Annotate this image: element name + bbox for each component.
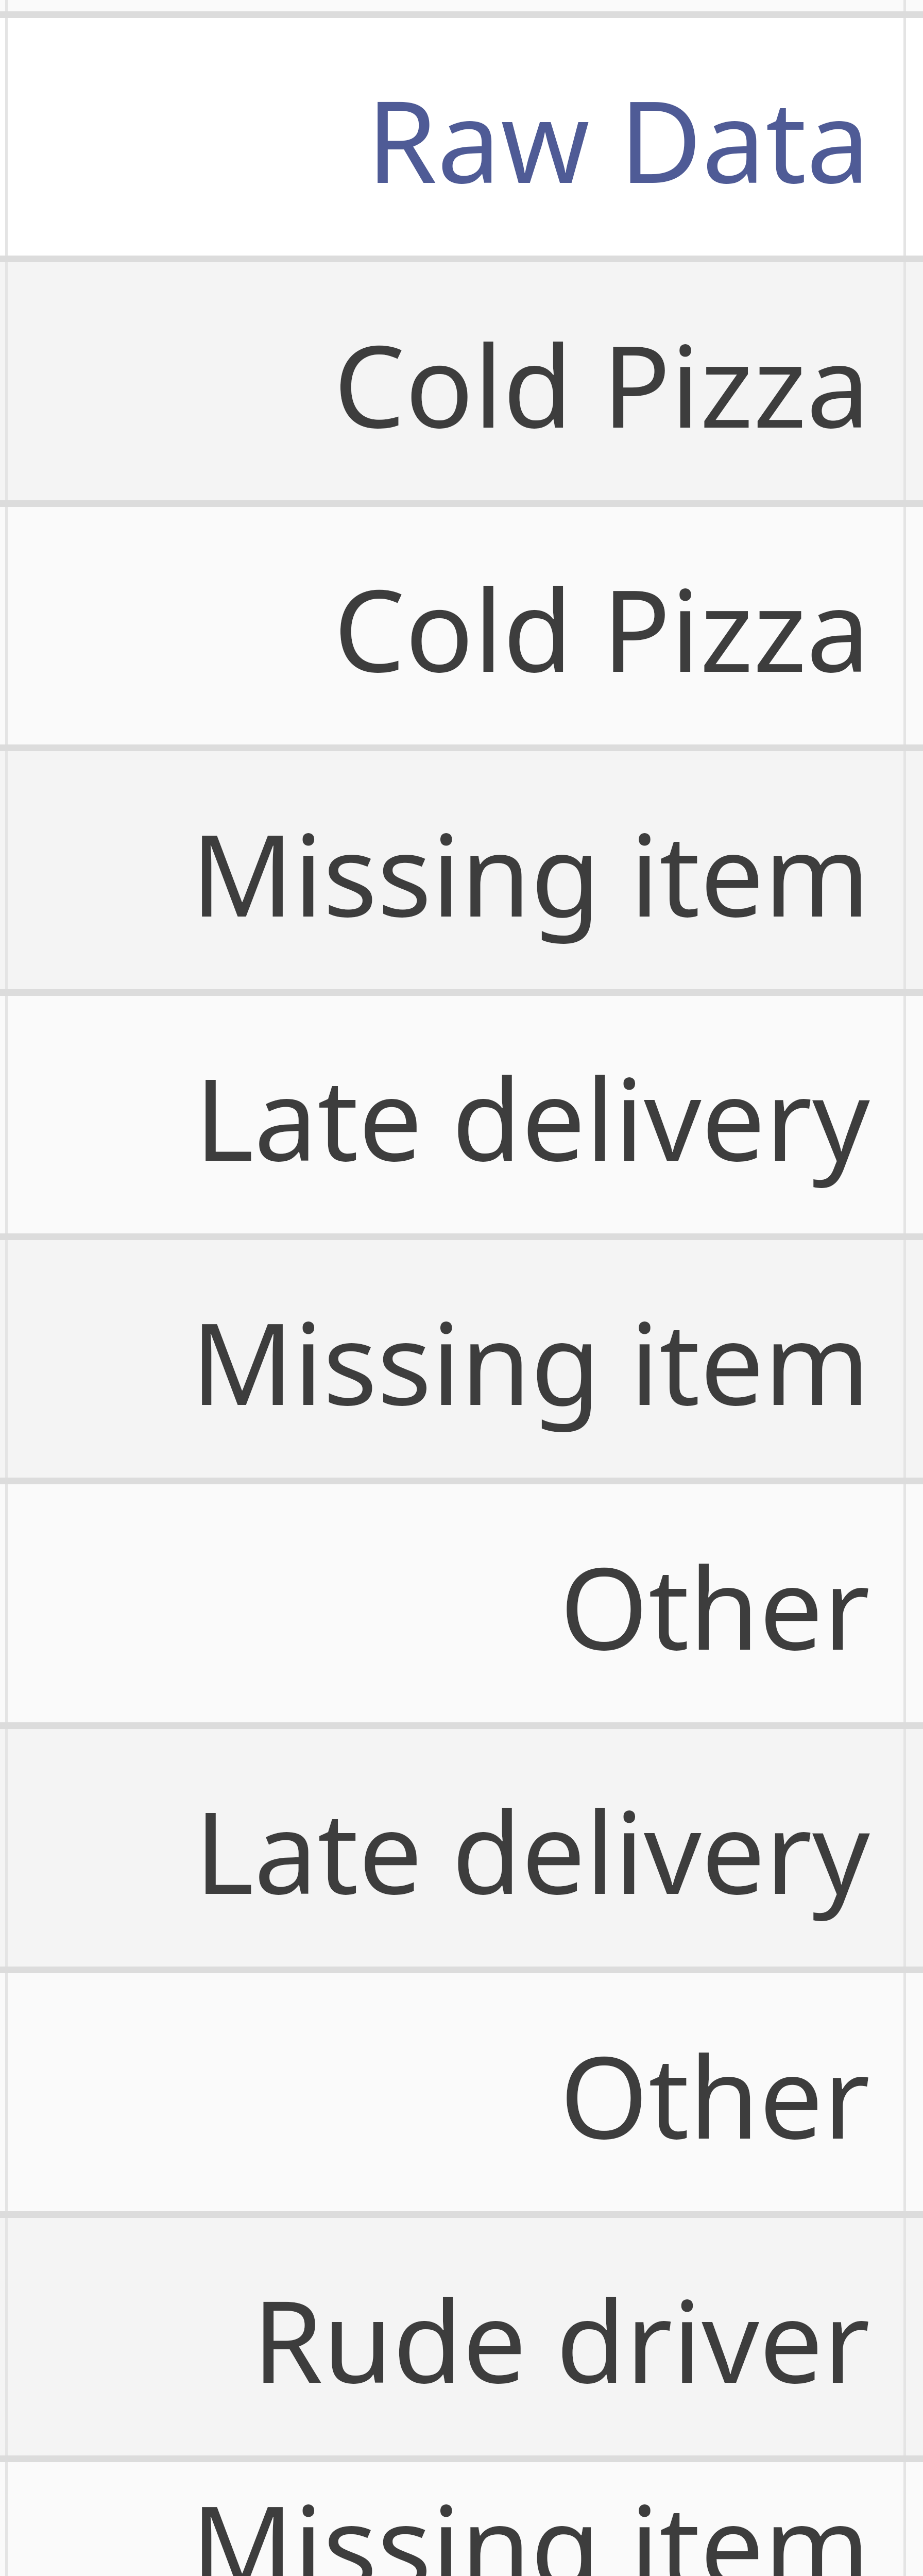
button[interactable]: Missing item (0, 1233, 923, 1478)
staticText: Missing item (191, 2467, 870, 2576)
button[interactable]: Other (0, 1967, 923, 2211)
button[interactable]: Cold Pizza (0, 500, 923, 744)
button[interactable]: Other (0, 1478, 923, 1722)
button[interactable]: Rude driver (0, 2211, 923, 2455)
button[interactable]: Missing item (0, 744, 923, 989)
staticText: Missing item (191, 1284, 870, 1438)
staticText: Late delivery (194, 1040, 870, 1194)
staticText: Other (559, 1529, 870, 1683)
staticText: Cold Pizza (333, 307, 870, 461)
staticText: Raw Data (366, 62, 870, 216)
staticText: Missing item (191, 795, 870, 950)
button[interactable]: Missing item (0, 2455, 923, 2576)
staticText: Other (559, 2018, 870, 2172)
staticText: Late delivery (194, 1773, 870, 1927)
staticText: Cold Pizza (333, 551, 870, 705)
button[interactable]: Late delivery (0, 1722, 923, 1967)
button[interactable]: Raw Data (0, 11, 923, 256)
staticText: Rude driver (252, 2262, 870, 2416)
button[interactable]: Cold Pizza (0, 256, 923, 500)
button[interactable]: Late delivery (0, 989, 923, 1233)
